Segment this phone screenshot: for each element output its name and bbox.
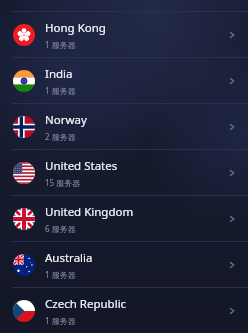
staticText: 1 服务器 xyxy=(45,269,76,280)
staticText: United Kingdom xyxy=(45,204,134,220)
other: Open Australia xyxy=(220,242,244,287)
staticText: 15 服务器 xyxy=(45,177,81,188)
other: Open United Kingdom xyxy=(220,196,244,241)
other: Open Norway xyxy=(220,104,244,149)
other: Open Czech Republic xyxy=(220,288,244,333)
staticText: Czech Republic xyxy=(45,296,127,312)
button[interactable]: Czech Republic xyxy=(0,288,248,333)
staticText: 2 服务器 xyxy=(45,131,76,142)
staticText: Australia xyxy=(45,250,93,266)
staticText: 1 服务器 xyxy=(45,315,76,326)
staticText: Norway xyxy=(45,112,87,128)
staticText: 6 服务器 xyxy=(45,223,76,234)
staticText: Hong Kong xyxy=(45,20,106,36)
button[interactable]: Norway xyxy=(0,104,248,149)
staticText: India xyxy=(45,66,73,82)
staticText: United States xyxy=(45,158,118,174)
button[interactable]: Australia xyxy=(0,242,248,287)
other: Open Hong Kong xyxy=(220,12,244,57)
other: Open United States xyxy=(220,150,244,195)
staticText: 1 服务器 xyxy=(45,85,76,96)
button[interactable]: Hong Kong xyxy=(0,12,248,57)
button[interactable]: India xyxy=(0,58,248,103)
staticText: 1 服务器 xyxy=(45,39,76,50)
button[interactable]: United Kingdom xyxy=(0,196,248,241)
button[interactable]: United States xyxy=(0,150,248,195)
other: Open India xyxy=(220,58,244,103)
